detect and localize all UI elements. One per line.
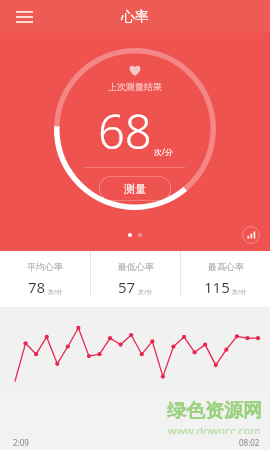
button[interactable]: 测量: [99, 176, 171, 201]
button[interactable]: Menu: [9, 2, 39, 32]
button[interactable]: Statistics: [242, 226, 260, 244]
staticText: 绿色资源网: [167, 399, 262, 423]
staticText: 最低心率: [118, 261, 154, 272]
staticText: 08:02: [239, 437, 260, 448]
staticText: 上次测量结果: [108, 81, 162, 92]
staticText: 平均心率: [27, 261, 63, 272]
staticText: www.downcc.com: [168, 423, 261, 434]
staticText: 57: [118, 277, 136, 297]
staticText: 2:09: [13, 437, 29, 448]
staticText: 最高心率: [208, 261, 244, 272]
staticText: 次/分: [154, 146, 173, 157]
button[interactable]: 最低心率: [91, 251, 180, 307]
button[interactable]: 最高心率: [181, 251, 270, 307]
button[interactable]: 平均心率: [0, 251, 90, 307]
staticText: 78: [28, 277, 46, 297]
staticText: 68: [98, 99, 152, 163]
staticText: 115: [204, 277, 230, 297]
staticText: 次/分: [48, 288, 63, 296]
staticText: 次/分: [138, 288, 153, 296]
staticText: 次/分: [232, 288, 247, 296]
staticText: 测量: [124, 182, 146, 196]
staticText: 心率: [121, 8, 149, 26]
